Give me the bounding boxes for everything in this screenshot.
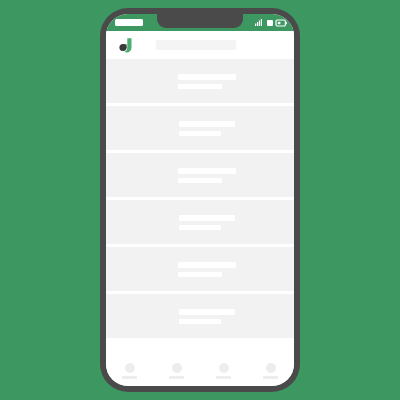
button[interactable]: Home: [106, 356, 153, 386]
button[interactable]: [106, 153, 294, 197]
button[interactable]: Profile: [247, 356, 294, 386]
button[interactable]: [106, 59, 294, 103]
button[interactable]: Library: [200, 356, 247, 386]
button[interactable]: [106, 200, 294, 244]
button[interactable]: [106, 294, 294, 338]
button[interactable]: Search: [153, 356, 200, 386]
button[interactable]: [106, 106, 294, 150]
button[interactable]: App logo: [116, 36, 134, 54]
button[interactable]: [106, 247, 294, 291]
